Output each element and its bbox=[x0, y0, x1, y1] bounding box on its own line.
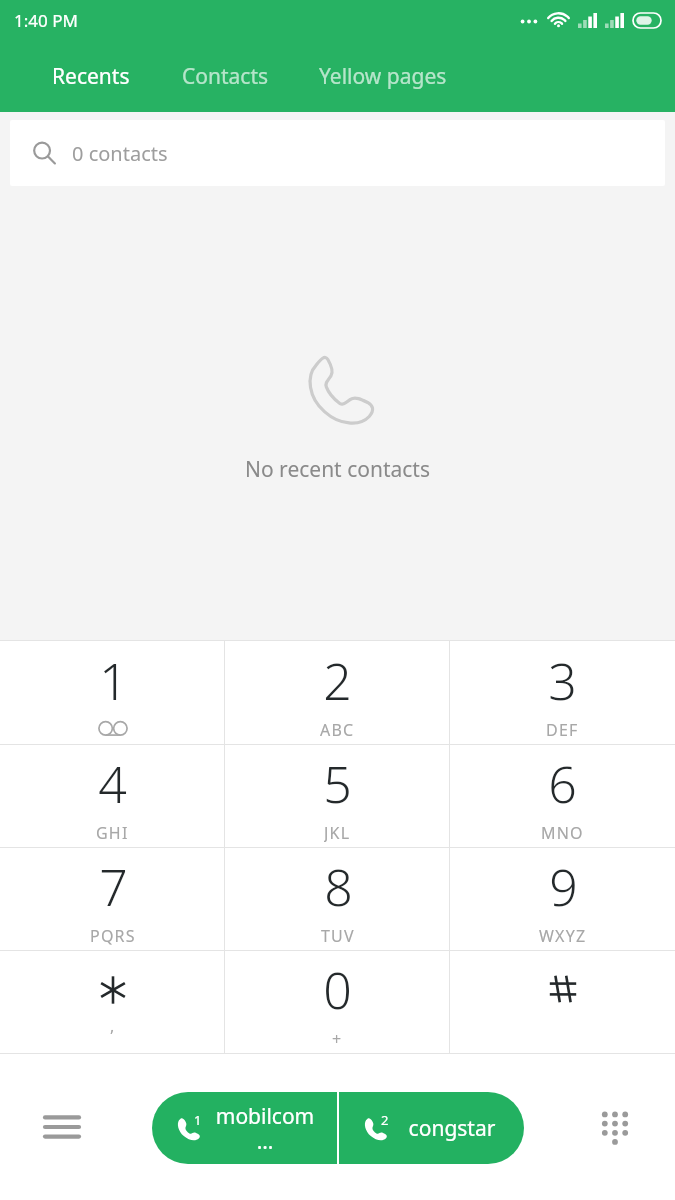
staticText: 4 bbox=[98, 750, 127, 818]
staticText: 9 bbox=[549, 853, 578, 921]
staticText: Recents bbox=[52, 62, 130, 91]
staticText: 3 bbox=[548, 647, 577, 715]
button[interactable]: 6 bbox=[450, 745, 675, 847]
staticText: congstar bbox=[400, 1114, 504, 1143]
button[interactable]: 7 bbox=[0, 848, 225, 950]
button[interactable]: 9 bbox=[450, 848, 675, 950]
button[interactable]: , bbox=[0, 951, 225, 1053]
staticText: JKL bbox=[324, 822, 351, 842]
staticText: 6 bbox=[548, 750, 577, 818]
staticText: + bbox=[332, 1028, 343, 1048]
button[interactable]: 2 bbox=[339, 1092, 524, 1164]
button[interactable]: 0 contacts bbox=[10, 120, 665, 186]
staticText: No recent contacts bbox=[245, 455, 431, 484]
button[interactable]: Menu bbox=[34, 1099, 90, 1155]
staticText: WXYZ bbox=[539, 925, 587, 945]
staticText: 1 bbox=[99, 647, 128, 715]
staticText: 2 bbox=[323, 647, 352, 715]
staticText: ABC bbox=[320, 719, 355, 739]
staticText: TUV bbox=[321, 925, 355, 945]
staticText: 7 bbox=[99, 853, 128, 921]
button[interactable]: 5 bbox=[225, 745, 450, 847]
staticText: mobilcom… bbox=[213, 1102, 317, 1155]
button[interactable]: 2 bbox=[225, 641, 450, 744]
staticText: 8 bbox=[324, 853, 353, 921]
staticText: 1:40 PM bbox=[14, 9, 78, 32]
button[interactable]: Recents bbox=[52, 54, 130, 99]
button[interactable]: 0 bbox=[225, 951, 450, 1053]
button[interactable]: Contacts bbox=[182, 54, 269, 99]
button[interactable]: Yellow pages bbox=[319, 54, 447, 99]
staticText: 2 bbox=[381, 1111, 389, 1129]
button[interactable]: 1 bbox=[152, 1092, 337, 1164]
staticText: 0 bbox=[323, 956, 352, 1024]
button[interactable] bbox=[450, 951, 675, 1053]
button[interactable]: 1 bbox=[0, 641, 225, 744]
staticText: PQRS bbox=[90, 925, 136, 945]
staticText: 0 contacts bbox=[72, 140, 168, 167]
staticText: 1 bbox=[194, 1111, 202, 1129]
button[interactable]: 3 bbox=[450, 641, 675, 744]
staticText: GHI bbox=[96, 822, 129, 842]
button[interactable]: 8 bbox=[225, 848, 450, 950]
staticText: DEF bbox=[546, 719, 579, 739]
staticText: , bbox=[110, 1015, 116, 1035]
staticText: Yellow pages bbox=[319, 62, 447, 91]
staticText: Contacts bbox=[182, 62, 269, 91]
button[interactable]: 4 bbox=[0, 745, 225, 847]
staticText: 5 bbox=[323, 750, 352, 818]
button[interactable]: Dialpad bbox=[587, 1099, 643, 1155]
staticText: MNO bbox=[541, 822, 584, 842]
